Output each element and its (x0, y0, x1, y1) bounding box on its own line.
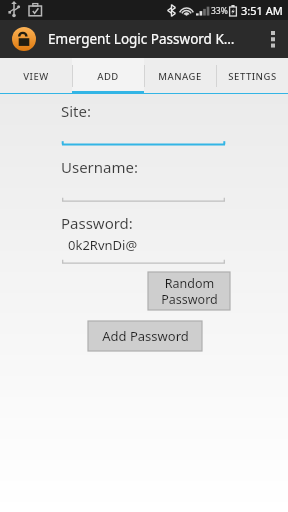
staticText: 33% (211, 5, 228, 17)
staticText: Site: (61, 101, 92, 121)
button[interactable]: ADD (72, 58, 144, 94)
staticText: 3:51 AM (241, 3, 283, 18)
staticText: Emergent Logic Password K… (48, 30, 235, 48)
staticText: ADD (97, 70, 119, 83)
button[interactable]: More options (258, 20, 288, 58)
staticText: Add Password (102, 327, 189, 345)
button[interactable]: VIEW (0, 58, 72, 94)
staticText: VIEW (23, 70, 49, 83)
button[interactable]: Random Password (148, 272, 230, 310)
button[interactable]: Add Password (88, 321, 202, 351)
staticText: 0k2RvnDi@ (68, 236, 138, 254)
staticText: SETTINGS (228, 70, 277, 83)
staticText: Password: (61, 213, 133, 233)
staticText: Random Password (161, 275, 218, 307)
staticText: MANAGE (158, 70, 202, 83)
button[interactable]: MANAGE (144, 58, 216, 94)
staticText: Username: (61, 157, 138, 177)
button[interactable]: SETTINGS (216, 58, 288, 94)
